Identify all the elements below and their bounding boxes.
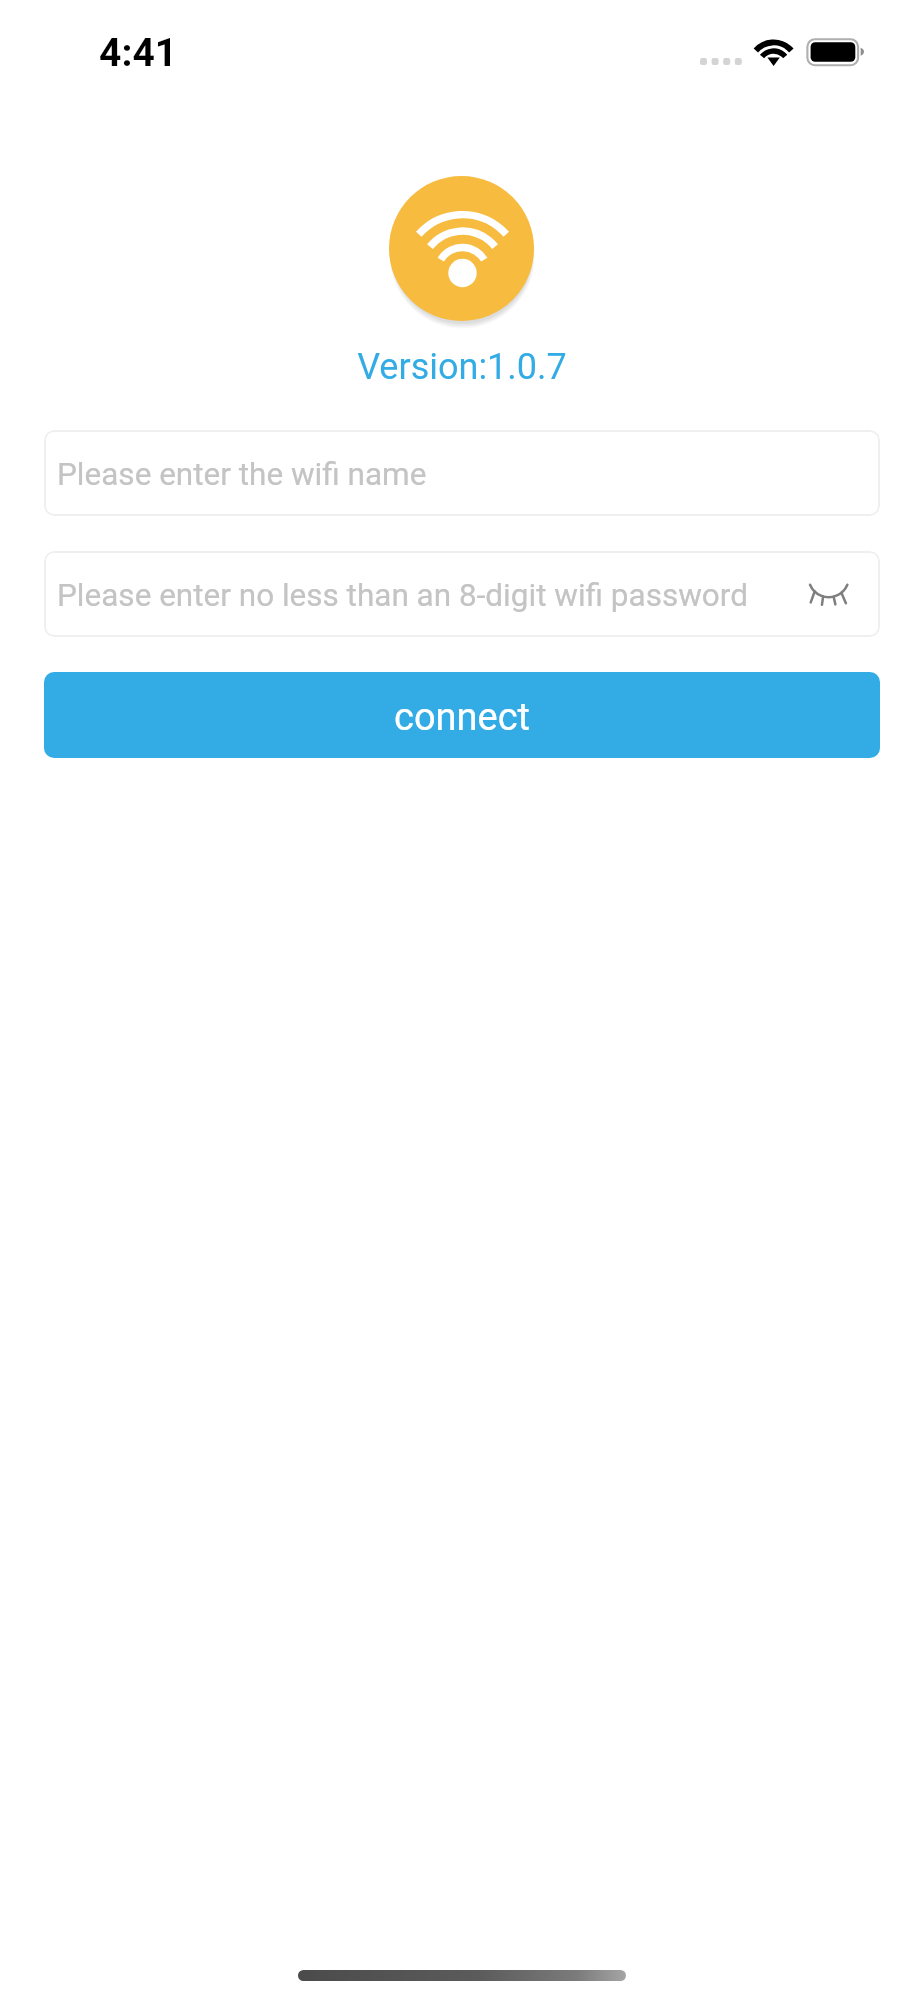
staticText: connect [394,695,531,740]
staticText: 4:41 [99,30,178,76]
button[interactable]: connect [44,672,880,758]
button[interactable]: Show password [795,561,859,627]
staticText: Please enter the wifi name [57,456,427,493]
staticText: Version:1.0.7 [0,346,924,388]
staticText: Please enter no less than an 8-digit wif… [57,577,748,614]
button[interactable]: Please enter the wifi name [44,430,880,516]
button[interactable]: Please enter no less than an 8-digit wif… [44,551,880,637]
